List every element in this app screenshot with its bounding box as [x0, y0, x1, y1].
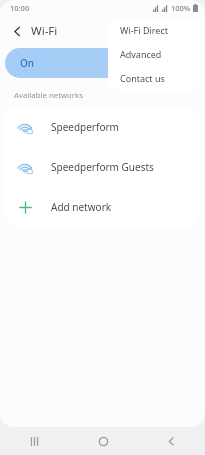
staticText: 10:00: [10, 3, 30, 13]
staticText: On: [20, 56, 35, 70]
staticText: Speedperform: [51, 120, 119, 134]
button[interactable]: Add network: [5, 187, 200, 227]
staticText: Wi-Fi: [31, 23, 58, 39]
staticText: Add network: [51, 200, 112, 214]
button[interactable]: Home: [69, 427, 137, 455]
button[interactable]: Wi-Fi Direct: [108, 18, 200, 42]
button[interactable]: Contact us: [108, 66, 200, 90]
staticText: Contact us: [120, 72, 165, 84]
button[interactable]: Recent apps: [0, 427, 69, 455]
button[interactable]: Speedperform: [5, 107, 200, 147]
staticText: Advanced: [120, 48, 162, 60]
button[interactable]: Speedperform Guests: [5, 147, 200, 187]
button[interactable]: Advanced: [108, 42, 200, 66]
staticText: Wi-Fi Direct: [120, 24, 168, 36]
button[interactable]: Back: [6, 20, 28, 42]
button[interactable]: Back: [137, 427, 205, 455]
staticText: 100%: [171, 3, 191, 13]
staticText: Available networks: [14, 90, 83, 101]
button[interactable]: On: [5, 48, 200, 78]
staticText: Speedperform Guests: [51, 160, 154, 174]
